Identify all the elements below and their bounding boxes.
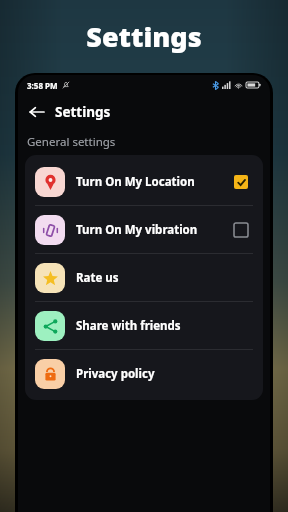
staticText: Settings: [55, 103, 111, 121]
button[interactable]: Turn On My vibration: [25, 206, 263, 253]
staticText: Turn On My vibration: [76, 222, 198, 238]
staticText: General settings: [27, 134, 116, 150]
button[interactable]: Disabled: [230, 219, 252, 241]
button[interactable]: Share with friends: [25, 302, 263, 349]
staticText: Rate us: [76, 270, 119, 286]
button[interactable]: Privacy policy: [25, 350, 263, 397]
button[interactable]: Back: [23, 98, 51, 126]
staticText: 3:58 PM: [27, 80, 58, 91]
button[interactable]: Rate us: [25, 254, 263, 301]
button[interactable]: Turn On My Location: [25, 158, 263, 205]
staticText: Share with friends: [76, 318, 181, 334]
staticText: Turn On My Location: [76, 174, 195, 190]
staticText: Privacy policy: [76, 366, 155, 382]
staticText: Settings: [86, 18, 202, 55]
button[interactable]: Enabled: [230, 171, 252, 193]
